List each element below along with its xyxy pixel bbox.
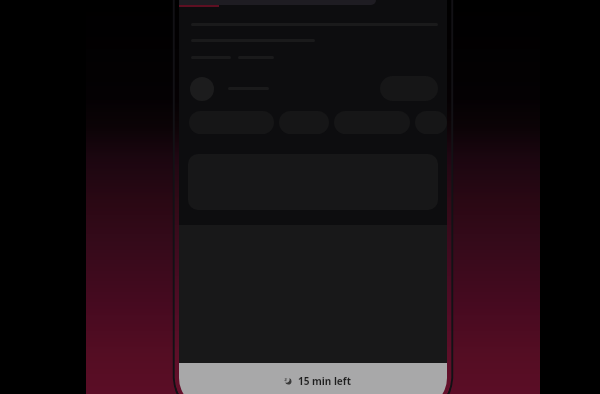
button[interactable]: Profile	[190, 77, 214, 101]
button[interactable]: Filter chip	[415, 111, 447, 134]
staticText: 15 min left	[298, 374, 352, 388]
button[interactable]: 15 min left	[179, 363, 447, 394]
